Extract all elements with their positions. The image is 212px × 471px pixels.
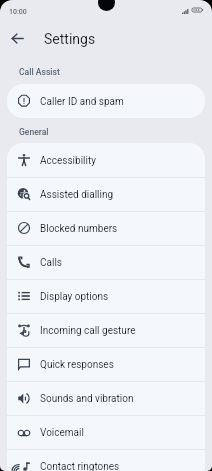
staticText: Display options xyxy=(40,291,109,303)
button[interactable]: Incoming call gesture xyxy=(7,313,205,347)
button[interactable]: Caller ID and spam xyxy=(7,84,205,118)
staticText: Caller ID and spam xyxy=(40,96,124,108)
staticText: General xyxy=(19,127,49,137)
staticText: Voicemail xyxy=(40,427,84,439)
button[interactable]: Sounds and vibration xyxy=(7,381,205,415)
button[interactable]: Assisted dialling xyxy=(7,177,205,211)
staticText: Assisted dialling xyxy=(40,189,114,201)
staticText: Settings xyxy=(44,31,96,47)
button[interactable]: Calls xyxy=(7,245,205,279)
button[interactable]: Blocked numbers xyxy=(7,211,205,245)
staticText: Contact ringtones xyxy=(40,461,120,471)
button[interactable]: Voicemail xyxy=(7,415,205,449)
button[interactable]: Back xyxy=(5,26,29,50)
staticText: Blocked numbers xyxy=(40,223,118,235)
button[interactable]: Contact ringtones xyxy=(7,449,205,471)
button[interactable]: Display options xyxy=(7,279,205,313)
staticText: Quick responses xyxy=(40,359,114,371)
staticText: Incoming call gesture xyxy=(40,325,136,337)
staticText: Call Assist xyxy=(19,67,60,77)
staticText: Calls xyxy=(40,257,62,269)
staticText: 10:00 xyxy=(9,8,27,16)
staticText: Sounds and vibration xyxy=(40,393,134,405)
staticText: Accessibility xyxy=(40,155,96,167)
button[interactable]: Quick responses xyxy=(7,347,205,381)
button[interactable]: Accessibility xyxy=(7,143,205,177)
